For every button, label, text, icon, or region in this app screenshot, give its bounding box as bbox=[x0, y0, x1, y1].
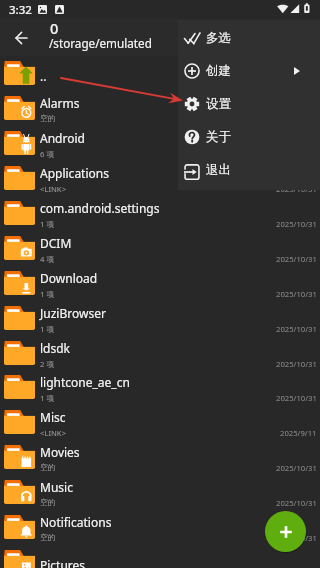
button[interactable]: Movies bbox=[0, 440, 320, 475]
button[interactable]: 多选 bbox=[178, 21, 320, 54]
staticText: Download bbox=[40, 270, 98, 286]
button[interactable]: Pictures bbox=[0, 545, 320, 568]
staticText: Music bbox=[40, 479, 73, 495]
staticText: 1 项 bbox=[40, 219, 55, 230]
staticText: 创建 bbox=[206, 63, 231, 79]
staticText: 6 项 bbox=[40, 149, 55, 160]
staticText: Applications bbox=[40, 165, 109, 181]
staticText: 1 项 bbox=[40, 289, 55, 300]
staticText: Movies bbox=[40, 444, 80, 460]
staticText: com.android.settings bbox=[40, 200, 160, 216]
staticText: 2025/10/31 bbox=[276, 533, 317, 543]
button[interactable]: JuziBrowser bbox=[0, 301, 320, 336]
staticText: 1 项 bbox=[40, 324, 55, 335]
staticText: 2025/10/31 bbox=[276, 463, 317, 473]
staticText: ldsdk bbox=[40, 340, 71, 356]
staticText: Notifications bbox=[40, 514, 112, 530]
staticText: .. bbox=[40, 68, 47, 84]
button[interactable]: Notifications bbox=[0, 510, 320, 545]
staticText: <LINK> bbox=[40, 184, 67, 194]
staticText: 2025/10/31 bbox=[276, 393, 317, 403]
button[interactable]: Back bbox=[4, 19, 38, 56]
button[interactable]: ldsdk bbox=[0, 336, 320, 371]
staticText: 2025/10/31 bbox=[276, 498, 317, 508]
staticText: 2025/10/31 bbox=[276, 289, 317, 299]
staticText: Android bbox=[40, 130, 85, 146]
button[interactable]: 创建 bbox=[178, 54, 320, 87]
staticText: JuziBrowser bbox=[40, 305, 106, 321]
button[interactable]: Download bbox=[0, 266, 320, 301]
button[interactable]: Misc bbox=[0, 405, 320, 440]
staticText: lightcone_ae_cn bbox=[40, 374, 130, 390]
button[interactable]: 退出 bbox=[178, 153, 320, 186]
staticText: 2025/9/11 bbox=[280, 428, 317, 438]
staticText: DCIM bbox=[40, 235, 72, 251]
button[interactable]: Applications bbox=[0, 161, 320, 196]
staticText: 4 项 bbox=[40, 254, 55, 265]
staticText: 多选 bbox=[206, 30, 231, 46]
staticText: 关于 bbox=[206, 129, 231, 145]
staticText: Alarms bbox=[40, 95, 80, 111]
staticText: 2025/10/31 bbox=[276, 324, 317, 334]
staticText: Pictures bbox=[40, 557, 86, 568]
staticText: /storage/emulated bbox=[49, 35, 152, 51]
staticText: 空的 bbox=[40, 114, 56, 124]
button[interactable]: lightcone_ae_cn bbox=[0, 370, 320, 405]
staticText: 2025/10/31 bbox=[276, 219, 317, 229]
staticText: 2 项 bbox=[40, 359, 55, 370]
button[interactable]: Music bbox=[0, 475, 320, 510]
staticText: 退出 bbox=[206, 162, 231, 178]
staticText: 空的 bbox=[40, 463, 56, 473]
button[interactable]: 设置 bbox=[178, 87, 320, 120]
button[interactable]: 关于 bbox=[178, 120, 320, 153]
staticText: 2025/10/31 bbox=[276, 184, 317, 194]
staticText: 空的 bbox=[40, 498, 56, 508]
staticText: 2025/10/31 bbox=[276, 359, 317, 369]
staticText: Misc bbox=[40, 409, 66, 425]
button[interactable]: .. bbox=[0, 56, 320, 91]
staticText: 2025/10/31 bbox=[276, 254, 317, 264]
staticText: <LINK> bbox=[40, 428, 67, 438]
button[interactable]: DCIM bbox=[0, 231, 320, 266]
staticText: 3:32 bbox=[9, 2, 32, 18]
staticText: 设置 bbox=[206, 96, 231, 112]
staticText: 0 bbox=[50, 18, 59, 38]
button[interactable]: Android bbox=[0, 126, 320, 161]
button[interactable]: Add bbox=[265, 511, 306, 552]
staticText: 1 项 bbox=[40, 393, 55, 404]
button[interactable]: com.android.settings bbox=[0, 196, 320, 231]
staticText: 空的 bbox=[40, 533, 56, 543]
button[interactable]: Alarms bbox=[0, 91, 320, 126]
